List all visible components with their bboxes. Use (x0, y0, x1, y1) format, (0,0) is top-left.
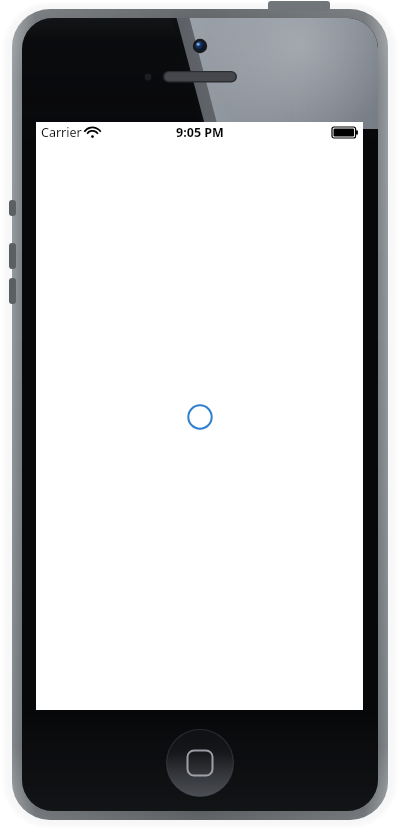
button[interactable]: Carrier (41, 124, 99, 141)
staticText: Carrier (41, 124, 82, 141)
staticText: 9:05 PM (176, 124, 224, 141)
button[interactable]: Loading indicator (187, 404, 213, 430)
button[interactable]: Battery full (332, 127, 358, 138)
